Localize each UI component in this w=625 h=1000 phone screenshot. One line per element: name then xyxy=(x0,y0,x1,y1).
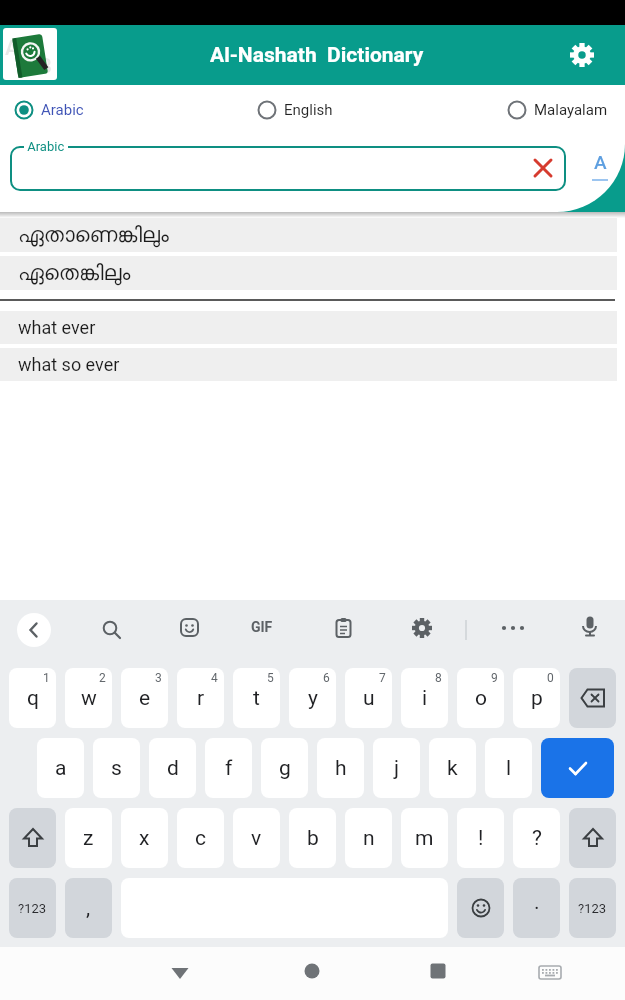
button[interactable]: , xyxy=(65,878,112,938)
button[interactable]: A xyxy=(3,28,57,80)
button[interactable]: o xyxy=(457,668,504,728)
staticText: r xyxy=(197,686,205,711)
button[interactable] xyxy=(410,616,434,640)
button[interactable] xyxy=(171,964,189,982)
button[interactable] xyxy=(538,964,562,988)
staticText: 2 xyxy=(99,671,106,685)
button[interactable]: t xyxy=(233,668,280,728)
button[interactable] xyxy=(17,613,51,647)
button[interactable]: a xyxy=(37,738,84,798)
staticText: d xyxy=(167,756,179,781)
button[interactable]: j xyxy=(373,738,420,798)
button[interactable]: what ever xyxy=(0,311,617,344)
button[interactable] xyxy=(457,878,504,938)
button[interactable]: · xyxy=(513,878,560,938)
staticText: l xyxy=(506,756,512,781)
button[interactable]: A xyxy=(586,151,614,181)
button[interactable] xyxy=(569,42,595,68)
button[interactable]: ! xyxy=(457,808,504,868)
button[interactable]: e xyxy=(121,668,168,728)
staticText: c xyxy=(195,826,206,851)
button[interactable]: English xyxy=(257,98,333,122)
staticText: 9 xyxy=(491,671,498,685)
button[interactable]: u xyxy=(345,668,392,728)
staticText: Arabic xyxy=(24,139,68,154)
button[interactable] xyxy=(10,146,566,191)
staticText: 0 xyxy=(547,671,554,685)
staticText: ഏതാണെങ്കിലും xyxy=(18,225,169,246)
staticText: ! xyxy=(478,826,484,851)
staticText: , xyxy=(86,896,91,921)
staticText: Al-Nashath Dictionary xyxy=(210,43,424,68)
button[interactable]: c xyxy=(177,808,224,868)
staticText: v xyxy=(251,826,262,851)
button[interactable]: f xyxy=(205,738,252,798)
staticText: s xyxy=(111,756,122,781)
staticText: 6 xyxy=(323,671,330,685)
button[interactable]: ? xyxy=(513,808,560,868)
button[interactable]: y xyxy=(289,668,336,728)
button[interactable]: m xyxy=(401,808,448,868)
button[interactable]: v xyxy=(233,808,280,868)
button[interactable]: b xyxy=(289,808,336,868)
button[interactable]: d xyxy=(149,738,196,798)
staticText: ഏതെങ്കിലും xyxy=(18,263,131,284)
staticText: · xyxy=(534,896,540,921)
staticText: o xyxy=(475,686,487,711)
button[interactable]: s xyxy=(93,738,140,798)
button[interactable]: q xyxy=(9,668,56,728)
button[interactable]: x xyxy=(121,808,168,868)
button[interactable]: ഏതെങ്കിലും xyxy=(0,256,617,290)
staticText: 7 xyxy=(379,671,386,685)
staticText: j xyxy=(394,756,400,781)
button[interactable]: ഏതാണെങ്കിലും xyxy=(0,218,617,252)
staticText: ?123 xyxy=(578,901,607,916)
button[interactable] xyxy=(532,157,554,179)
button[interactable] xyxy=(101,619,123,641)
button[interactable] xyxy=(179,617,201,639)
staticText: e xyxy=(139,686,151,711)
staticText: g xyxy=(279,756,291,781)
button[interactable] xyxy=(9,808,56,868)
button[interactable] xyxy=(579,615,601,637)
button[interactable] xyxy=(333,617,355,639)
staticText: n xyxy=(363,826,375,851)
button[interactable]: w xyxy=(65,668,112,728)
button[interactable]: h xyxy=(317,738,364,798)
button[interactable]: Arabic xyxy=(14,98,84,122)
staticText: m xyxy=(415,826,434,851)
button[interactable]: what so ever xyxy=(0,348,617,381)
button[interactable] xyxy=(430,963,446,979)
button[interactable]: l xyxy=(485,738,532,798)
button[interactable] xyxy=(569,808,616,868)
staticText: f xyxy=(225,756,233,781)
button[interactable]: ?123 xyxy=(9,878,56,938)
staticText: 4 xyxy=(211,671,218,685)
button[interactable]: k xyxy=(429,738,476,798)
staticText: 8 xyxy=(435,671,442,685)
button[interactable] xyxy=(304,963,320,979)
button[interactable]: r xyxy=(177,668,224,728)
button[interactable] xyxy=(500,619,526,645)
staticText: A xyxy=(5,36,19,59)
button[interactable]: z xyxy=(65,808,112,868)
button[interactable]: Malayalam xyxy=(507,98,608,122)
staticText: English xyxy=(284,101,333,119)
button[interactable]: g xyxy=(261,738,308,798)
button[interactable]: ?123 xyxy=(569,878,616,938)
staticText: z xyxy=(83,826,94,851)
button[interactable] xyxy=(541,738,614,798)
button[interactable]: i xyxy=(401,668,448,728)
staticText: y xyxy=(308,686,318,711)
staticText: 5 xyxy=(267,671,274,685)
staticText: Arabic xyxy=(41,101,84,119)
staticText: Malayalam xyxy=(534,101,608,119)
staticText: p xyxy=(531,686,543,711)
button[interactable]: GIF xyxy=(251,619,273,635)
staticText: 1 xyxy=(43,671,50,685)
button[interactable] xyxy=(569,668,616,728)
button[interactable]: p xyxy=(513,668,560,728)
button[interactable]: n xyxy=(345,808,392,868)
staticText: a xyxy=(55,756,67,781)
